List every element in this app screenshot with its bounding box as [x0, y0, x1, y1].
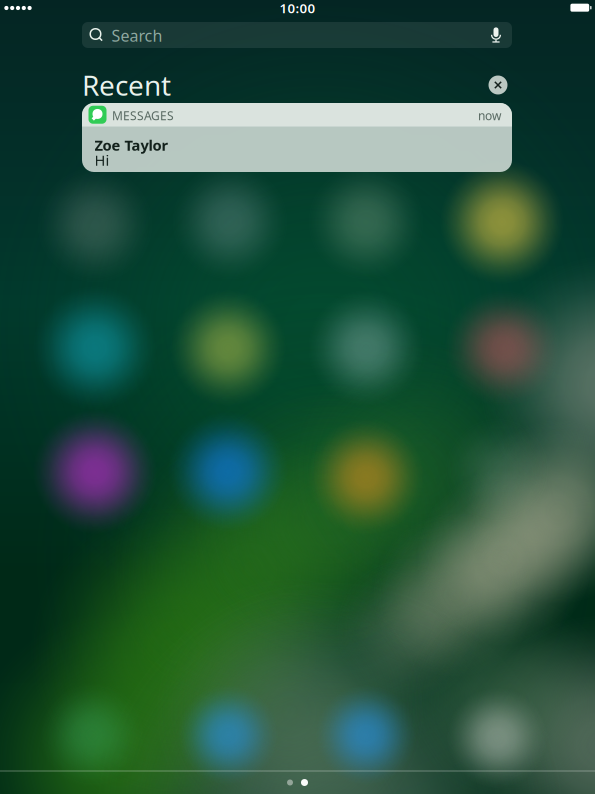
- button[interactable]: Search: [82, 22, 512, 48]
- staticText: Zoe Taylor: [94, 135, 168, 155]
- staticText: MESSAGES: [112, 107, 174, 123]
- button[interactable]: Clear recent notifications: [484, 71, 512, 99]
- staticText: Search: [111, 25, 162, 46]
- button[interactable]: MESSAGES: [82, 103, 512, 172]
- staticText: Hi: [94, 150, 109, 170]
- staticText: now: [478, 107, 501, 123]
- staticText: 10:00: [279, 0, 315, 17]
- staticText: Recent: [82, 66, 171, 104]
